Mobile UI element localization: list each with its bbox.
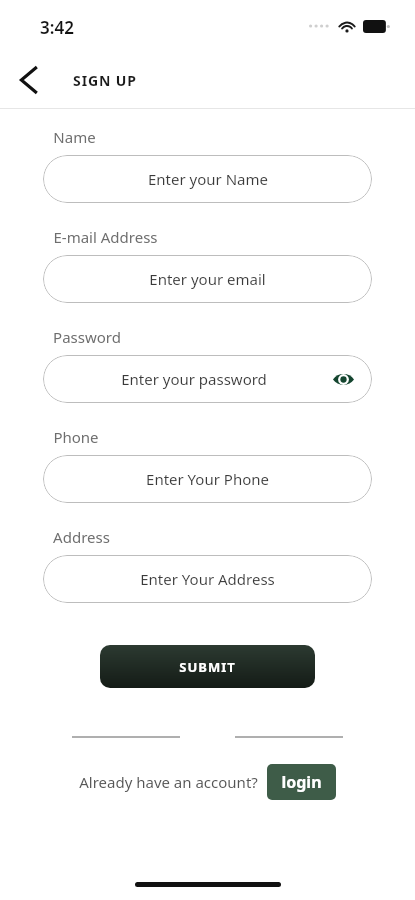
button[interactable]: Enter Your Phone [43,455,372,503]
staticText: Enter Your Phone [146,469,269,489]
staticText: Password [53,327,121,347]
button[interactable]: Enter your Name [43,155,372,203]
staticText: Address [53,527,110,547]
button[interactable]: Enter your email [43,255,372,303]
staticText: Already have an account? [79,772,258,792]
button[interactable]: Show password [328,364,358,394]
staticText: 3:42 [40,16,74,39]
staticText: Phone [53,427,99,447]
staticText: Enter your email [149,269,266,289]
staticText: Name [53,127,96,147]
button[interactable]: Enter your password [43,355,372,403]
button[interactable]: Back [6,58,50,102]
button[interactable]: SUBMIT [100,645,315,688]
staticText: Enter your Name [148,169,268,189]
staticText: Enter Your Address [140,569,275,589]
staticText: SUBMIT [179,658,236,676]
button[interactable]: Enter Your Address [43,555,372,603]
button[interactable]: login [267,764,336,800]
staticText: login [281,771,322,793]
staticText: Enter your password [121,369,267,389]
staticText: E-mail Address [53,227,158,247]
staticText: SIGN UP [73,71,137,90]
